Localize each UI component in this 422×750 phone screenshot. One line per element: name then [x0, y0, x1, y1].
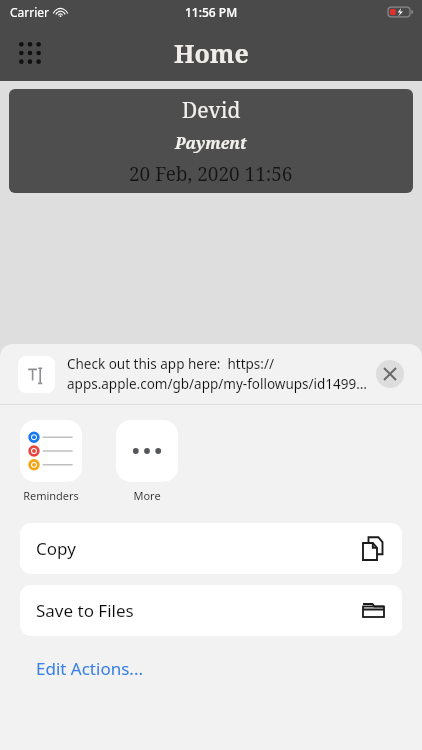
button[interactable]: Edit Actions...	[20, 651, 159, 686]
button[interactable]: Devid	[9, 89, 413, 193]
staticText: Reminders	[23, 488, 79, 503]
staticText: Copy	[36, 537, 361, 560]
staticText: More	[133, 488, 161, 503]
staticText: Home	[174, 36, 249, 70]
staticText: 11:56 PM	[185, 4, 238, 20]
button[interactable]: Reminders	[18, 418, 84, 505]
button[interactable]: Copy	[20, 523, 402, 574]
button[interactable]: Save to Files	[20, 585, 402, 636]
staticText: Check out this app here: https://	[67, 355, 274, 373]
button[interactable]: Close	[376, 360, 404, 388]
staticText: apps.apple.com/gb/app/my-followups/id149…	[67, 375, 367, 393]
button[interactable]: More	[114, 418, 180, 505]
staticText: Edit Actions...	[36, 657, 143, 680]
staticText: Payment	[175, 132, 247, 154]
staticText: Save to Files	[36, 599, 361, 622]
staticText: 20 Feb, 2020 11:56	[129, 161, 293, 187]
button[interactable]: Menu	[8, 31, 52, 75]
staticText: Devid	[182, 96, 241, 125]
staticText: Carrier	[10, 4, 50, 20]
